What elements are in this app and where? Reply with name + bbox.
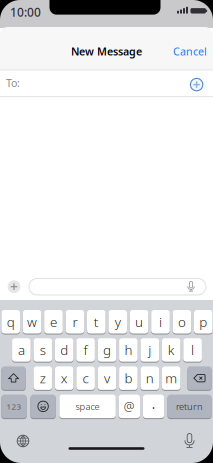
staticText: j	[148, 341, 151, 359]
button[interactable]: a	[12, 338, 31, 363]
button[interactable]: v	[98, 366, 116, 391]
staticText: w	[27, 313, 37, 331]
staticText: New Message	[71, 44, 142, 58]
staticText: m	[165, 369, 177, 387]
button[interactable]: h	[119, 338, 138, 363]
button[interactable]: o	[173, 310, 191, 334]
button[interactable]: Dictation	[181, 432, 197, 449]
staticText: space	[76, 400, 100, 413]
button[interactable]: return	[167, 395, 211, 419]
button[interactable]: Shift	[1, 366, 26, 391]
staticText: @	[124, 398, 135, 414]
button[interactable]: m	[162, 366, 180, 391]
staticText: Cancel	[173, 44, 207, 58]
staticText: g	[103, 341, 111, 359]
button[interactable]: c	[76, 366, 95, 391]
button[interactable]: e	[44, 310, 63, 334]
staticText: h	[124, 341, 132, 359]
button[interactable]: t	[87, 310, 106, 334]
button[interactable]: i	[151, 310, 170, 334]
staticText: t	[94, 313, 99, 331]
staticText: f	[84, 341, 88, 359]
button[interactable]: x	[55, 366, 73, 391]
staticText: To:	[6, 76, 20, 90]
button[interactable]: Add Contact	[190, 78, 203, 91]
button[interactable]: w	[23, 310, 41, 334]
button[interactable]: Next keyboard	[16, 434, 29, 447]
button[interactable]: d	[55, 338, 73, 363]
button[interactable]: q	[1, 310, 20, 334]
staticText: c	[83, 369, 89, 387]
button[interactable]: Numbers	[1, 395, 27, 419]
staticText: q	[7, 313, 15, 331]
button[interactable]: b	[119, 366, 138, 391]
button[interactable]: space	[59, 395, 116, 419]
staticText: k	[168, 341, 175, 359]
button[interactable]: y	[108, 310, 127, 334]
button[interactable]: u	[130, 310, 148, 334]
staticText: return	[176, 400, 203, 413]
button[interactable]: l	[183, 338, 202, 363]
button[interactable]: Cancel	[173, 44, 207, 58]
button[interactable]: @	[119, 395, 140, 419]
button[interactable]: Emoji	[30, 395, 56, 419]
staticText: 10:00	[10, 4, 41, 20]
staticText: v	[104, 369, 110, 387]
staticText: i	[159, 313, 162, 331]
staticText: p	[199, 313, 207, 331]
button[interactable]: s	[33, 338, 52, 363]
button[interactable]: r	[66, 310, 84, 334]
staticText: z	[40, 369, 46, 387]
staticText: d	[60, 341, 68, 359]
staticText: l	[191, 341, 194, 359]
button[interactable]: j	[140, 338, 159, 363]
staticText: x	[61, 369, 68, 387]
staticText: a	[18, 341, 25, 359]
button[interactable]: z	[33, 366, 52, 391]
staticText: u	[135, 313, 143, 331]
button[interactable]: Message field	[29, 278, 206, 295]
button[interactable]: p	[194, 310, 213, 334]
staticText: 123	[7, 401, 22, 412]
staticText: o	[178, 313, 186, 331]
staticText: s	[40, 341, 46, 359]
button[interactable]: Delete	[187, 366, 212, 391]
staticText: b	[124, 369, 132, 387]
staticText: n	[146, 369, 154, 387]
button[interactable]: g	[98, 338, 116, 363]
staticText: e	[50, 313, 57, 331]
button[interactable]: k	[162, 338, 180, 363]
button[interactable]: f	[76, 338, 95, 363]
button[interactable]: Apps	[7, 280, 20, 293]
staticText: r	[72, 313, 77, 331]
button[interactable]	[143, 395, 164, 419]
staticText: y	[115, 313, 121, 331]
button[interactable]: n	[140, 366, 159, 391]
